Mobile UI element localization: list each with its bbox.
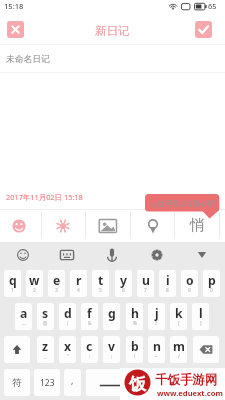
button[interactable]: Keyboard	[56, 244, 78, 266]
staticText: m	[173, 338, 185, 355]
button[interactable]: m	[170, 336, 187, 363]
staticText: @	[43, 320, 48, 327]
staticText: 点这里可以设置心情	[150, 199, 215, 208]
staticText: 7	[144, 287, 147, 294]
staticText: 2	[33, 287, 36, 294]
staticText: l	[199, 305, 203, 322]
button[interactable]: Save	[195, 21, 212, 38]
staticText: r	[76, 272, 82, 289]
staticText: 15:18	[4, 1, 24, 11]
staticText: 。	[175, 377, 184, 388]
staticText: p	[208, 272, 216, 289]
staticText: i	[166, 272, 170, 289]
staticText: ~	[155, 353, 158, 360]
staticText: 2017年11月02日 15:18	[6, 192, 83, 202]
staticText: 123	[40, 377, 55, 389]
button[interactable]: y	[115, 270, 132, 297]
button[interactable]: k	[170, 303, 187, 330]
button[interactable]: Numbers	[34, 369, 60, 396]
staticText: j	[155, 305, 159, 322]
staticText: ,	[71, 374, 74, 386]
staticText: k	[175, 305, 183, 322]
staticText: 4	[77, 287, 80, 294]
staticText: www.eduext.com	[157, 388, 223, 398]
staticText: u	[142, 272, 150, 289]
staticText: (	[178, 320, 180, 327]
button[interactable]: Settings	[146, 244, 168, 266]
button[interactable]: d	[59, 303, 76, 330]
button[interactable]: e	[48, 270, 65, 297]
staticText: 9	[188, 287, 191, 294]
staticText: v	[108, 338, 115, 355]
staticText: 悄	[190, 216, 205, 235]
button[interactable]: Emoji	[12, 244, 34, 266]
button[interactable]: Backspace	[193, 336, 219, 363]
staticText: …	[22, 320, 26, 327]
staticText: z	[42, 338, 49, 355]
button[interactable]: i	[159, 270, 176, 297]
button[interactable]: Comma	[64, 369, 81, 396]
button[interactable]: q	[4, 270, 21, 297]
button[interactable]: b	[126, 336, 143, 363]
staticText: _	[44, 353, 47, 360]
staticText: &	[88, 320, 92, 327]
staticText: )	[200, 320, 202, 327]
staticText: d	[64, 305, 72, 322]
button[interactable]: Space	[86, 369, 166, 396]
button[interactable]: Shift	[4, 336, 30, 363]
button[interactable]: Location	[141, 216, 165, 236]
staticText: 千饭手游网	[155, 372, 218, 388]
staticText: n	[153, 338, 161, 355]
button[interactable]: h	[126, 303, 143, 330]
staticText: 符	[12, 377, 22, 389]
button[interactable]: j	[148, 303, 165, 330]
button[interactable]: p	[203, 270, 220, 297]
staticText: g	[108, 305, 116, 322]
staticText: t	[98, 272, 104, 289]
button[interactable]: a	[15, 303, 32, 330]
button[interactable]: r	[70, 270, 87, 297]
button[interactable]: Enter	[194, 369, 222, 396]
button[interactable]: Hide keyboard	[191, 244, 213, 266]
staticText: f	[87, 305, 92, 322]
button[interactable]: z	[37, 336, 54, 363]
staticText: %	[133, 320, 137, 327]
button[interactable]: 悄	[186, 212, 212, 238]
staticText: 65	[208, 1, 217, 11]
staticText: 3	[55, 287, 58, 294]
staticText: w	[29, 272, 40, 289]
button[interactable]: w	[26, 270, 43, 297]
staticText: 饭	[129, 374, 146, 395]
staticText: h	[131, 305, 139, 322]
staticText: b	[131, 338, 139, 355]
staticText: |	[66, 320, 69, 327]
button[interactable]: n	[148, 336, 165, 363]
staticText: 0	[210, 287, 213, 294]
button[interactable]: Voice input	[101, 244, 123, 266]
staticText: 8	[166, 287, 169, 294]
staticText: y	[120, 272, 127, 289]
button[interactable]: Close	[7, 21, 24, 38]
staticText: 1	[11, 287, 14, 294]
button[interactable]: x	[59, 336, 76, 363]
staticText: 未命名日记	[6, 54, 50, 65]
button[interactable]: Symbols	[4, 369, 30, 396]
button[interactable]: t	[92, 270, 109, 297]
staticText: a	[20, 305, 28, 322]
button[interactable]: Photo	[96, 216, 120, 236]
staticText: ?	[155, 320, 158, 327]
button[interactable]: Weather	[51, 216, 75, 236]
button[interactable]: Period	[169, 369, 190, 396]
button[interactable]: g	[103, 303, 120, 330]
button[interactable]: s	[37, 303, 54, 330]
staticText: -	[111, 320, 113, 327]
staticText: q	[9, 272, 17, 289]
button[interactable]: c	[81, 336, 98, 363]
button[interactable]: v	[103, 336, 120, 363]
button[interactable]: u	[137, 270, 154, 297]
staticText: c	[86, 338, 93, 355]
button[interactable]: f	[81, 303, 98, 330]
button[interactable]: l	[192, 303, 209, 330]
button[interactable]: o	[181, 270, 198, 297]
button[interactable]: Mood	[7, 216, 31, 236]
